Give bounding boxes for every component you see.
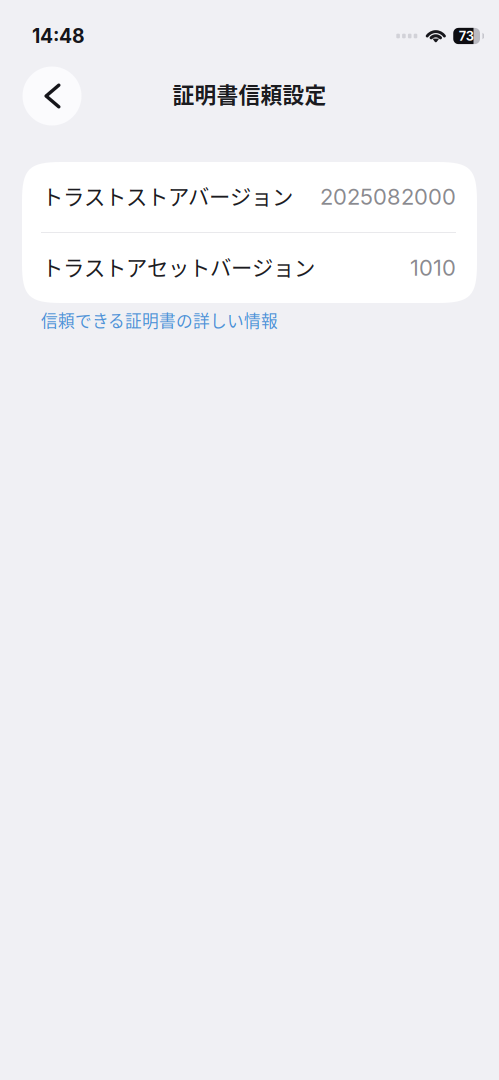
button[interactable]: Back — [22, 66, 81, 125]
staticText: 証明書信頼設定 — [172, 78, 326, 109]
staticText: トラストアセットバージョン — [42, 251, 315, 282]
staticText: 14:48 — [32, 24, 85, 48]
staticText: 2025082000 — [320, 183, 456, 210]
staticText: 73 — [459, 28, 474, 44]
staticText: 信頼できる証明書の詳しい情報 — [41, 308, 278, 332]
staticText: 1010 — [410, 254, 456, 281]
staticText: トラストストアバージョン — [42, 180, 293, 211]
button[interactable]: 信頼できる証明書の詳しい情報 — [0, 303, 499, 347]
